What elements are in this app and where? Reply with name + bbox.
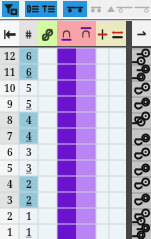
button[interactable]: 1 (19, 208, 38, 224)
button[interactable]: Move note (96, 21, 109, 48)
button[interactable]: 2 (19, 176, 38, 192)
button[interactable]: Sharp (19, 21, 38, 48)
staticText: 1 (26, 225, 32, 239)
button[interactable]: 6 (19, 64, 38, 80)
staticText: 2 (7, 209, 13, 223)
staticText: 8 (7, 113, 13, 127)
button[interactable]: Fermata below (57, 21, 76, 48)
button[interactable]: Resize note (109, 21, 126, 48)
button[interactable]: 2 (19, 192, 38, 208)
staticText: 10 (4, 81, 16, 95)
button[interactable]: 6 (0, 144, 19, 160)
staticText: 5 (7, 161, 13, 175)
staticText: 7 (7, 129, 13, 143)
button[interactable]: Filter (2, 1, 19, 17)
staticText: 9 (7, 97, 13, 111)
staticText: 5 (26, 81, 32, 95)
staticText: 1 (26, 209, 32, 223)
button[interactable]: 9 (0, 96, 19, 112)
button[interactable]: 6 (19, 48, 38, 64)
button[interactable]: 5 (19, 96, 38, 112)
button[interactable]: 2 (0, 208, 19, 224)
staticText: 3 (26, 145, 32, 159)
staticText: 3 (26, 161, 32, 175)
staticText: 2 (26, 177, 32, 191)
staticText: 12 (4, 49, 16, 63)
button[interactable]: 1 (0, 224, 19, 239)
button[interactable]: 1 (19, 224, 38, 239)
button[interactable]: 7 (0, 128, 19, 144)
staticText: 2 (26, 193, 32, 207)
button[interactable]: Text (41, 1, 57, 17)
button[interactable]: 4 (19, 128, 38, 144)
staticText: 5 (26, 97, 32, 111)
staticText: 3 (7, 193, 13, 207)
button[interactable]: Fermata above (76, 21, 96, 48)
button[interactable]: 10 (0, 80, 19, 96)
button[interactable]: Beam two notes (88, 1, 104, 17)
staticText: 11 (4, 65, 16, 79)
button[interactable]: Clef (38, 21, 57, 48)
staticText: 6 (7, 145, 13, 159)
staticText: 6 (26, 65, 32, 79)
button[interactable]: 5 (19, 80, 38, 96)
button[interactable]: 8 (0, 112, 19, 128)
staticText: 6 (26, 49, 32, 63)
button[interactable]: 4 (19, 112, 38, 128)
button[interactable]: Dynamics (25, 1, 41, 17)
staticText: 1 (7, 225, 13, 239)
button[interactable]: 4 (0, 176, 19, 192)
button[interactable]: Rewind to start (0, 21, 19, 48)
button[interactable]: Beam start (115, 1, 134, 17)
button[interactable]: 3 (19, 144, 38, 160)
button[interactable]: Tuplet (103, 1, 119, 17)
button[interactable]: 3 (19, 160, 38, 176)
button[interactable]: Beam end (133, 1, 151, 17)
button[interactable]: Beam notes (63, 1, 87, 17)
button[interactable]: 11 (0, 64, 19, 80)
button[interactable]: 5 (0, 160, 19, 176)
staticText: 4 (26, 129, 32, 143)
button[interactable]: 12 (0, 48, 19, 64)
staticText: 4 (26, 113, 32, 127)
button[interactable]: 3 (0, 192, 19, 208)
staticText: 4 (7, 177, 13, 191)
